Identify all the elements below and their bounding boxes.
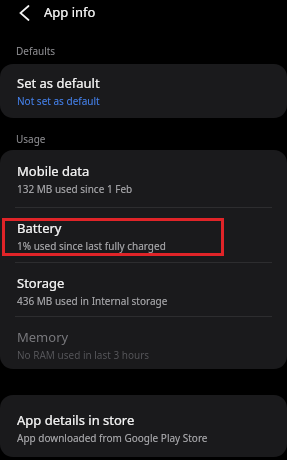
button[interactable]: Battery [0, 208, 287, 262]
staticText: Memory [17, 328, 69, 346]
button[interactable]: Set as default [0, 64, 287, 118]
staticText: Usage [16, 132, 46, 146]
staticText: Defaults [16, 44, 56, 58]
staticText: App downloaded from Google Play Store [17, 431, 208, 445]
button[interactable]: Memory [0, 317, 287, 369]
staticText: Not set as default [17, 94, 100, 108]
staticText: App info [44, 3, 96, 21]
staticText: App details in store [17, 411, 135, 429]
button[interactable]: App details in store [0, 395, 287, 457]
staticText: 132 MB used since 1 Feb [17, 182, 133, 196]
button[interactable]: App info [0, 0, 287, 28]
staticText: Storage [17, 274, 65, 292]
staticText: 436 MB used in Internal storage [17, 294, 168, 308]
staticText: Mobile data [17, 162, 90, 180]
staticText: No RAM used in last 3 hours [17, 348, 150, 362]
staticText: Battery [17, 219, 62, 237]
staticText: 1% used since last fully charged [17, 239, 166, 253]
staticText: Set as default [17, 74, 100, 92]
button[interactable]: Storage [0, 263, 287, 316]
button[interactable]: Mobile data [0, 150, 287, 207]
